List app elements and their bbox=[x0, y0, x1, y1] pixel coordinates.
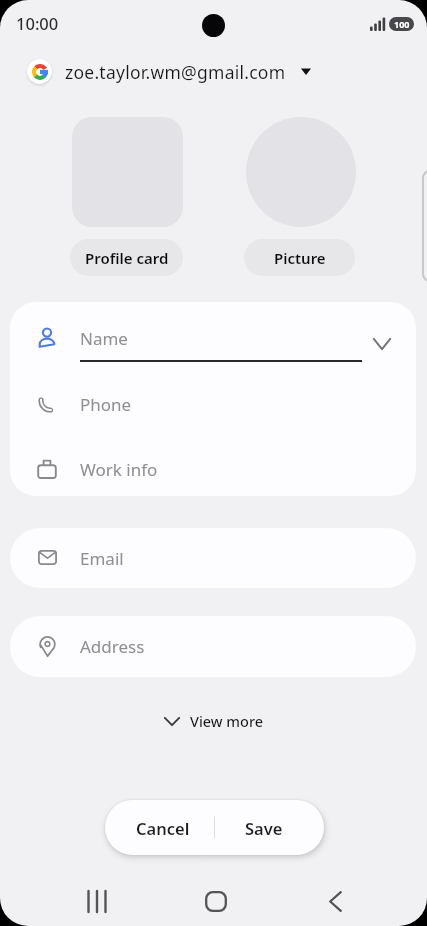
button[interactable]: Profile card bbox=[70, 239, 183, 276]
button[interactable]: Phone bbox=[10, 376, 416, 432]
button[interactable]: Save bbox=[215, 800, 324, 855]
staticText: Save bbox=[245, 817, 283, 839]
button[interactable]: Name bbox=[10, 310, 416, 366]
staticText: zoe.taylor.wm@gmail.com bbox=[65, 60, 286, 84]
button[interactable]: Picture bbox=[244, 239, 355, 276]
button[interactable] bbox=[246, 117, 356, 227]
button[interactable] bbox=[76, 880, 118, 922]
staticText: Profile card bbox=[85, 248, 169, 268]
staticText: View more bbox=[190, 711, 264, 731]
staticText: Address bbox=[80, 635, 145, 658]
button[interactable] bbox=[195, 880, 237, 922]
button[interactable]: Work info bbox=[10, 441, 416, 496]
staticText: Work info bbox=[80, 458, 158, 481]
staticText: Email bbox=[80, 547, 124, 570]
staticText: Picture bbox=[274, 248, 326, 268]
button[interactable]: zoe.taylor.wm@gmail.com bbox=[27, 57, 311, 86]
staticText: Name bbox=[80, 327, 128, 350]
button[interactable]: Address bbox=[10, 616, 416, 677]
staticText: 100 bbox=[394, 18, 410, 30]
staticText: Phone bbox=[80, 393, 132, 416]
button[interactable]: View more bbox=[0, 706, 427, 736]
button[interactable]: Email bbox=[10, 528, 416, 588]
staticText: 10:00 bbox=[16, 12, 59, 34]
button[interactable] bbox=[314, 880, 356, 922]
button[interactable]: Cancel bbox=[105, 800, 214, 855]
staticText: Cancel bbox=[136, 817, 190, 839]
